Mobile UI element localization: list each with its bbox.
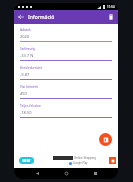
button[interactable]: Kerületkerület (20, 66, 112, 85)
staticText: 450 (20, 91, 27, 96)
staticText: 11:54 (107, 5, 115, 9)
staticText: Online Shopping (74, 156, 96, 160)
button[interactable]: Teljes felszíne (20, 104, 112, 123)
button[interactable]: Add (99, 133, 112, 146)
button[interactable]: MENT (19, 157, 34, 164)
staticText: 2020 (20, 34, 30, 39)
button[interactable]: Back (31, 168, 43, 179)
staticText: -18.50 (20, 110, 32, 115)
staticText: Vízi hőmérő (20, 85, 39, 89)
staticText: Google Play (73, 161, 88, 165)
button[interactable]: Delete (106, 12, 116, 22)
button[interactable]: Home (60, 168, 72, 179)
staticText: -9.87 (20, 72, 30, 77)
staticText: Szélesség (20, 47, 35, 51)
button[interactable]: Szélesség (20, 47, 112, 66)
staticText: Kerületkerület (20, 66, 42, 70)
button[interactable]: Vízi hőmérő (20, 85, 112, 104)
staticText: Információ (28, 14, 55, 21)
staticText: Teljes felszíne (20, 104, 41, 108)
staticText: -33.7 N (20, 53, 34, 58)
staticText: MENT (22, 159, 31, 163)
button[interactable]: Adatok (20, 28, 112, 47)
button[interactable]: Recent apps (89, 168, 101, 179)
staticText: Adatok (20, 28, 31, 32)
button[interactable]: Back (16, 12, 26, 22)
button[interactable]: Online Shopping (53, 154, 117, 166)
